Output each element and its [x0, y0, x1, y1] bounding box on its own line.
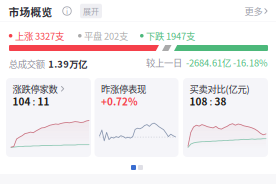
staticText: 较上一日 [146, 56, 182, 69]
staticText: 总成交额 [9, 57, 45, 70]
button[interactable]: 展开 [79, 4, 103, 18]
staticText: 下跌 1947支 [146, 29, 195, 42]
staticText: i [66, 6, 68, 16]
staticText: -2684.61亿 -16.18% [186, 56, 268, 69]
staticText: 买卖对比(亿元) [189, 82, 249, 95]
staticText: 更多 [244, 4, 262, 18]
button[interactable]: 更多 [234, 4, 268, 18]
staticText: 104 : 11 [12, 94, 49, 108]
button[interactable]: 说明 [58, 3, 76, 19]
staticText: 1.39万亿 [48, 57, 87, 70]
staticText: 108 : 38 [189, 94, 226, 108]
button[interactable]: 昨涨停表现 [94, 78, 178, 157]
button[interactable]: 涨跌停家数 [6, 78, 91, 157]
staticText: 展开 [83, 5, 99, 17]
staticText: 昨涨停表现 [101, 82, 146, 95]
staticText: 涨跌停家数 [12, 82, 57, 95]
button[interactable]: 买卖对比(亿元) [183, 78, 268, 157]
staticText: 上涨 3327支 [15, 29, 64, 42]
staticText: +0.72% [101, 94, 138, 108]
staticText: 平盘 202支 [84, 29, 128, 42]
staticText: 市场概览 [8, 4, 52, 19]
